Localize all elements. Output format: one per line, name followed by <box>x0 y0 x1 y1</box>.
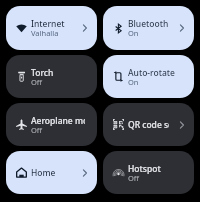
staticText: Off <box>31 125 43 135</box>
button[interactable]: Hotspot <box>103 151 194 194</box>
staticText: Auto-rotate <box>128 67 175 79</box>
staticText: Hotspot <box>128 163 161 175</box>
button[interactable]: Bluetooth <box>103 6 194 50</box>
button[interactable]: QR code scanner <box>103 103 194 146</box>
staticText: On <box>128 77 139 87</box>
staticText: Aeroplane mode <box>31 115 85 127</box>
button[interactable]: Home <box>6 151 97 194</box>
button[interactable]: Internet <box>6 6 97 50</box>
staticText: Valhalla <box>31 28 59 38</box>
staticText: Off <box>128 173 140 183</box>
staticText: Bluetooth <box>128 18 169 30</box>
staticText: Home <box>31 167 56 179</box>
staticText: Torch <box>31 67 54 79</box>
staticText: Off <box>31 77 43 87</box>
button[interactable]: Torch <box>6 55 97 98</box>
button[interactable]: Aeroplane mode <box>6 103 97 146</box>
staticText: Internet <box>31 18 65 30</box>
button[interactable]: Auto-rotate <box>103 55 194 98</box>
staticText: QR code scanner <box>128 119 169 131</box>
staticText: On <box>128 28 139 38</box>
